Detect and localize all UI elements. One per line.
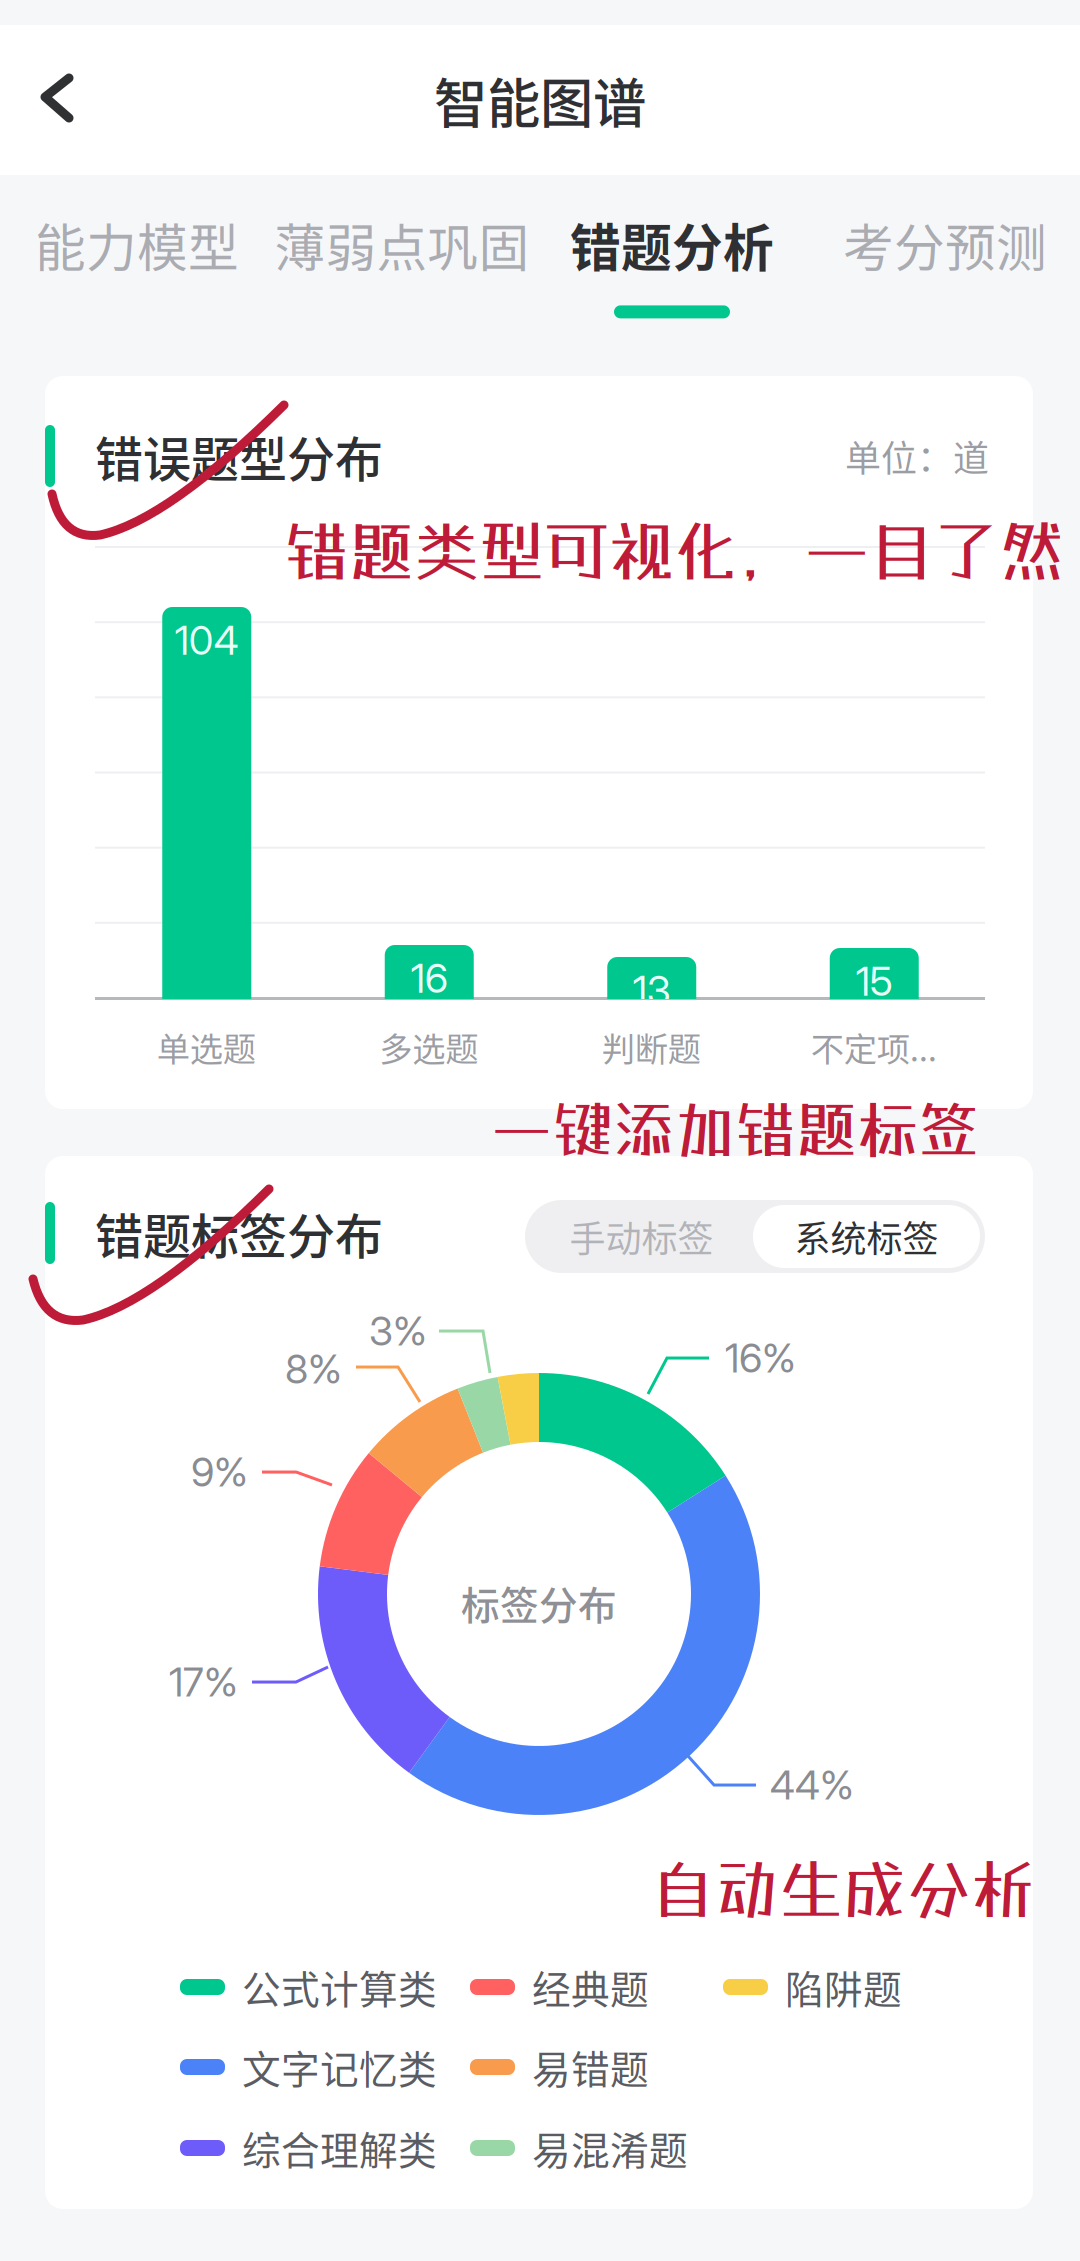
staticText: 单选题 bbox=[157, 1023, 256, 1071]
staticText: 9% bbox=[191, 1448, 248, 1496]
staticText: 104 bbox=[175, 616, 239, 664]
button[interactable]: 考分预测 bbox=[843, 208, 1047, 318]
staticText: 错题标签分布 bbox=[95, 1198, 383, 1268]
staticText: 13 bbox=[633, 966, 671, 1014]
staticText: 薄弱点巩固 bbox=[274, 208, 529, 281]
staticText: 易混淆题 bbox=[532, 2120, 688, 2176]
staticText: 16% bbox=[725, 1334, 796, 1382]
staticText: 16 bbox=[411, 954, 448, 1002]
staticText: 标签分布 bbox=[461, 1575, 617, 1631]
staticText: 综合理解类 bbox=[242, 2120, 437, 2176]
staticText: 考分预测 bbox=[843, 208, 1047, 281]
button[interactable]: 系统标签 bbox=[753, 1205, 980, 1268]
staticText: 44% bbox=[770, 1761, 854, 1809]
staticText: 能力模型 bbox=[35, 208, 239, 281]
button[interactable]: 手动标签 bbox=[525, 1200, 758, 1273]
button[interactable]: 返回 bbox=[0, 37, 116, 161]
staticText: 不定项... bbox=[811, 1023, 937, 1071]
staticText: 文字记忆类 bbox=[242, 2039, 437, 2095]
staticText: 单位：道 bbox=[845, 430, 989, 482]
button[interactable]: 能力模型 bbox=[35, 208, 239, 318]
staticText: 一键添加错题标签 bbox=[491, 1093, 979, 1165]
staticText: 错题分析 bbox=[570, 208, 774, 281]
staticText: 经典题 bbox=[532, 1959, 649, 2015]
staticText: 判断题 bbox=[602, 1023, 701, 1071]
staticText: 陷阱题 bbox=[785, 1959, 902, 2015]
button[interactable]: 错题分析 bbox=[570, 208, 774, 318]
staticText: 易错题 bbox=[532, 2039, 649, 2095]
staticText: 错题类型可视化，一目了然 bbox=[284, 512, 1064, 590]
staticText: 17% bbox=[169, 1658, 238, 1706]
staticText: 公式计算类 bbox=[242, 1959, 437, 2015]
staticText: 多选题 bbox=[379, 1023, 478, 1071]
staticText: 15 bbox=[856, 957, 893, 1005]
staticText: 自动生成分析 bbox=[651, 1851, 1035, 1927]
staticText: 系统标签 bbox=[794, 1210, 938, 1262]
staticText: 3% bbox=[369, 1307, 427, 1355]
staticText: 手动标签 bbox=[569, 1210, 713, 1262]
button[interactable]: 薄弱点巩固 bbox=[274, 208, 529, 318]
staticText: 智能图谱 bbox=[434, 61, 646, 139]
staticText: 错误题型分布 bbox=[95, 421, 383, 491]
staticText: 8% bbox=[285, 1345, 342, 1393]
